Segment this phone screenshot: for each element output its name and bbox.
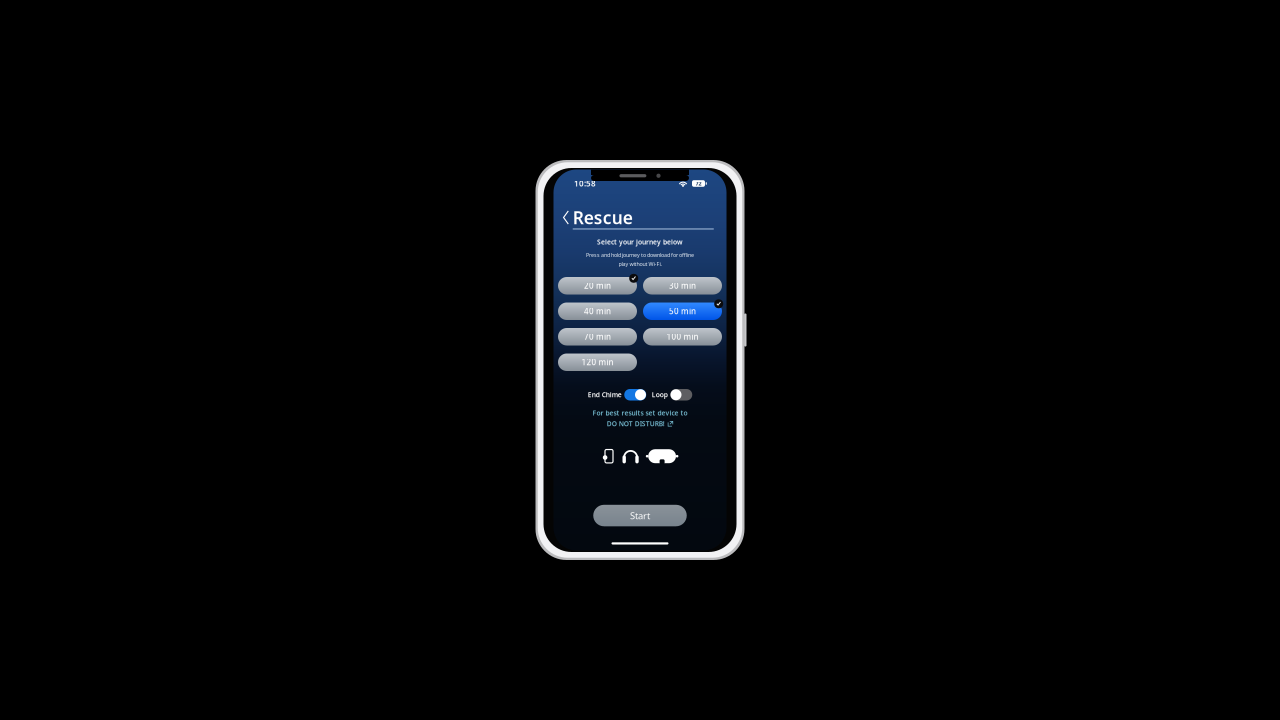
button[interactable]: 70 min — [558, 328, 637, 345]
button[interactable]: 100 min — [643, 328, 722, 345]
staticText: 10:58 — [574, 178, 596, 189]
staticText: 40 min — [584, 306, 611, 316]
staticText: Loop — [652, 390, 668, 399]
button[interactable]: Start — [593, 505, 687, 526]
staticText: 72 — [695, 180, 701, 187]
staticText: 30 min — [669, 280, 696, 291]
button[interactable]: End chime — [624, 389, 646, 400]
button[interactable]: 30 min — [643, 277, 722, 294]
button[interactable]: 20 min — [558, 277, 637, 294]
staticText: 70 min — [584, 331, 611, 342]
staticText: DO NOT DISTURB! — [607, 419, 665, 428]
button[interactable]: 50 min — [643, 302, 722, 320]
button[interactable]: Back — [561, 208, 571, 226]
staticText: Press and hold journey to download for o… — [586, 251, 694, 258]
staticText: Select your journey below — [597, 237, 683, 246]
staticText: Start — [630, 509, 650, 522]
button[interactable]: 40 min — [558, 302, 637, 320]
staticText: For best results set device to — [592, 408, 687, 417]
staticText: 120 min — [581, 357, 613, 367]
button[interactable]: Loop — [670, 389, 692, 400]
staticText: End Chime — [588, 390, 622, 399]
staticText: 100 min — [666, 331, 698, 342]
button[interactable]: 120 min — [558, 353, 637, 371]
staticText: 20 min — [584, 280, 611, 291]
staticText: play without Wi-Fi. — [618, 260, 661, 267]
staticText: Rescue — [573, 206, 633, 229]
staticText: 50 min — [669, 306, 696, 316]
